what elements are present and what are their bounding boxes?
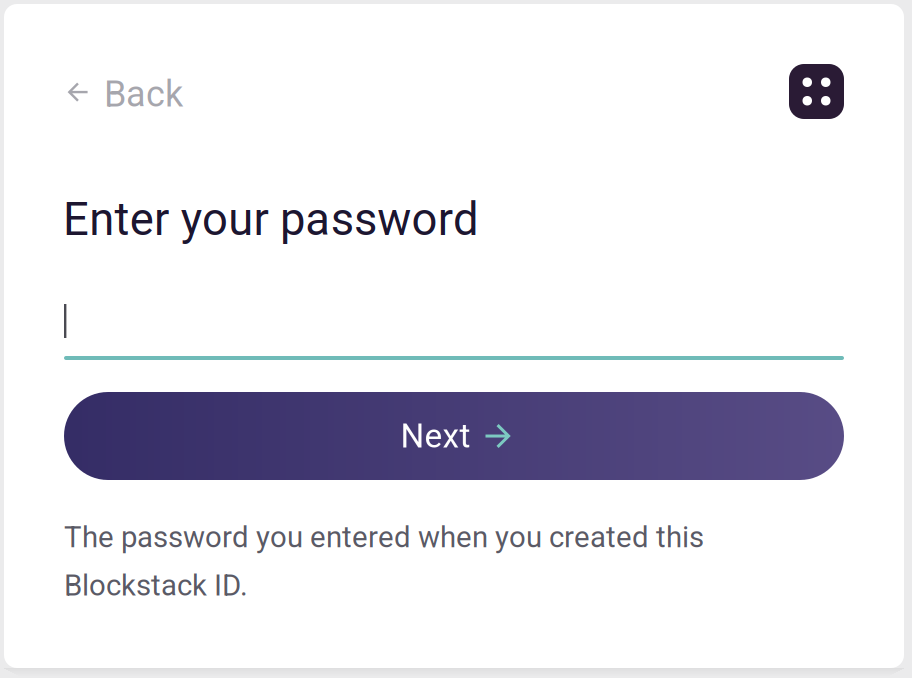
button[interactable]: Next [64, 392, 844, 480]
button[interactable]: Blockstack [789, 64, 844, 119]
staticText: Enter your password [63, 193, 479, 246]
staticText: Next [400, 416, 470, 456]
staticText: Back [104, 73, 183, 115]
button[interactable]: Back [68, 73, 183, 115]
secureTextField[interactable]: Password [64, 300, 844, 360]
staticText: The password you entered when you create… [64, 520, 704, 603]
